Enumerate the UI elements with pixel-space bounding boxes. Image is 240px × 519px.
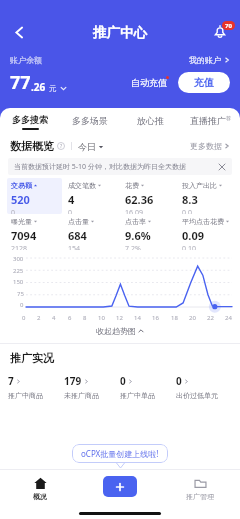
button[interactable]: 直播推广 <box>180 108 240 136</box>
button[interactable]: 推广管理 <box>160 469 240 509</box>
staticText: 概况 <box>33 492 47 501</box>
staticText: 225 <box>13 267 24 275</box>
staticText: 未推广商品 <box>64 391 99 400</box>
staticText: 点击量 <box>68 217 89 226</box>
staticText: 0 <box>11 208 16 214</box>
staticText: 24 <box>225 314 232 322</box>
staticText: 16 <box>152 314 159 322</box>
staticText: 179 <box>64 374 82 388</box>
staticText: 元 <box>49 84 57 93</box>
staticText: 曝光量 <box>11 217 32 226</box>
button[interactable]: 投入产出比 <box>178 178 233 214</box>
button[interactable]: 收起趋势图 <box>0 322 240 340</box>
staticText: 0 <box>120 374 126 388</box>
button[interactable]: oCPX批量创建上线啦! <box>72 444 168 463</box>
button[interactable]: Notifications <box>209 21 231 43</box>
staticText: 70 <box>225 22 232 30</box>
button[interactable]: 概况 <box>0 469 80 509</box>
button[interactable]: 曝光量 <box>7 214 62 250</box>
staticText: 684 <box>68 228 87 243</box>
staticText: 75 <box>17 290 24 298</box>
button[interactable]: 自动充值 <box>131 77 169 88</box>
staticText: 8 <box>83 314 87 322</box>
staticText: 0 <box>176 374 182 388</box>
button[interactable]: Close hint <box>217 162 227 172</box>
button[interactable]: 7 <box>8 374 64 400</box>
button[interactable]: 今日 <box>78 141 104 152</box>
staticText: 8.3 <box>182 192 198 207</box>
button[interactable]: Create <box>103 476 137 497</box>
staticText: 充值 <box>194 76 214 89</box>
staticText: 77 <box>10 70 31 95</box>
staticText: 荐 <box>226 115 231 121</box>
staticText: 7094 <box>11 228 37 243</box>
staticText: 交易额 <box>11 181 32 190</box>
button[interactable]: 更多数据 <box>190 141 230 151</box>
button[interactable]: 充值 <box>178 72 230 93</box>
button[interactable]: 多多场景 <box>60 108 120 136</box>
button[interactable]: 77 <box>10 70 67 95</box>
staticText: 推广管理 <box>186 492 214 501</box>
staticText: 投入产出比 <box>182 181 217 190</box>
staticText: 22 <box>207 314 214 322</box>
button[interactable]: 成交笔数 <box>64 178 119 214</box>
staticText: 数据概览 <box>10 139 54 153</box>
staticText: 平均点击花费 <box>182 217 224 226</box>
staticText: 自动充值 <box>131 77 167 88</box>
staticText: 300 <box>13 255 24 263</box>
staticText: 20 <box>189 314 196 322</box>
staticText: 12 <box>116 314 123 322</box>
staticText: 放心推 <box>137 115 164 126</box>
staticText: 150 <box>13 278 24 286</box>
staticText: 0.10 <box>182 244 196 250</box>
staticText: 推广实况 <box>10 351 54 365</box>
staticText: 收起趋势图 <box>96 326 136 336</box>
button[interactable]: 多多搜索 <box>0 108 60 136</box>
staticText: 10 <box>98 314 105 322</box>
staticText: 直播推广 <box>190 115 226 126</box>
staticText: 当前数据预计延时 5-10 分钟，对比数据为昨日全天数据 <box>14 162 186 172</box>
staticText: .26 <box>31 80 46 94</box>
staticText: 0.09 <box>182 228 204 243</box>
staticText: 推广中商品 <box>8 391 43 400</box>
button[interactable]: 0 <box>176 374 232 400</box>
button[interactable]: 点击量 <box>64 214 119 250</box>
staticText: 18 <box>171 314 178 322</box>
staticText: oCPX批量创建上线啦! <box>81 448 159 459</box>
staticText: 推广中单品 <box>120 391 155 400</box>
staticText: 4 <box>52 314 56 322</box>
button[interactable]: 179 <box>64 374 120 400</box>
button[interactable]: 点击率 <box>121 214 176 250</box>
staticText: 0 <box>20 301 24 309</box>
staticText: 账户余额 <box>10 55 42 65</box>
staticText: 7.2% <box>125 244 141 250</box>
staticText: 我的账户 <box>189 55 221 65</box>
staticText: 4 <box>68 192 75 207</box>
staticText: 推广中心 <box>93 24 147 41</box>
button[interactable]: 平均点击花费 <box>178 214 233 250</box>
staticText: 62.36 <box>125 192 154 207</box>
staticText: 0 <box>22 314 26 322</box>
staticText: 多多搜索 <box>12 114 48 125</box>
button[interactable]: Back <box>5 18 33 46</box>
staticText: 2 <box>37 314 41 322</box>
staticText: 2128 <box>11 244 28 250</box>
staticText: 520 <box>11 192 30 207</box>
staticText: 今日 <box>78 141 96 152</box>
staticText: ? <box>60 143 63 150</box>
staticText: 6 <box>68 314 72 322</box>
button[interactable]: 我的账户 <box>189 55 230 65</box>
button[interactable]: 花费 <box>121 178 176 214</box>
staticText: 出价过低单元 <box>176 391 218 400</box>
button[interactable]: 0 <box>120 374 176 400</box>
button[interactable]: 交易额 <box>7 178 62 214</box>
staticText: 点击率 <box>125 217 146 226</box>
button[interactable]: 放心推 <box>120 108 180 136</box>
staticText: 154 <box>68 244 81 250</box>
button[interactable]: Help <box>57 142 65 150</box>
staticText: 0.0 <box>182 208 192 214</box>
staticText: 16.09 <box>125 208 143 214</box>
staticText: 7 <box>8 374 14 388</box>
staticText: 成交笔数 <box>68 181 96 190</box>
staticText: 多多场景 <box>72 115 108 126</box>
